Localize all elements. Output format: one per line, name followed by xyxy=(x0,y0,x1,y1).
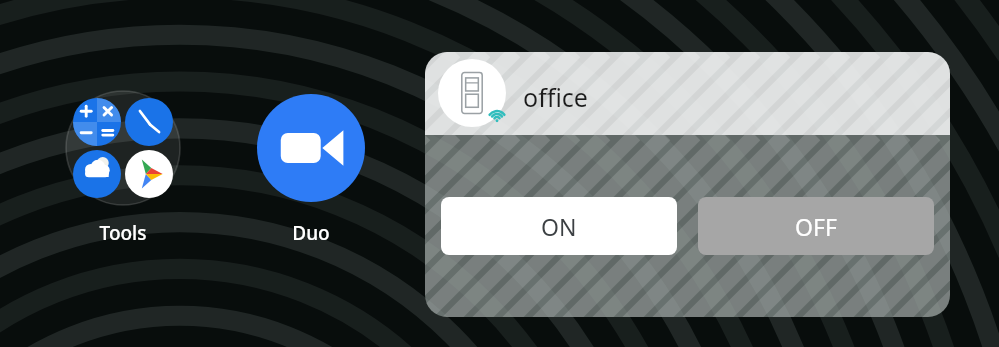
staticText: OFF xyxy=(795,211,837,242)
button[interactable]: OFF xyxy=(698,197,934,255)
staticText: Tools xyxy=(63,220,183,250)
staticText: ON xyxy=(541,211,577,242)
staticText: Duo xyxy=(251,220,371,250)
button[interactable]: Duo xyxy=(251,220,371,250)
staticText: office xyxy=(523,80,588,114)
button[interactable]: ON xyxy=(441,197,677,255)
button[interactable]: office xyxy=(425,52,950,317)
staticText: 10°C xyxy=(75,165,119,181)
button[interactable]: Tools xyxy=(63,220,183,250)
